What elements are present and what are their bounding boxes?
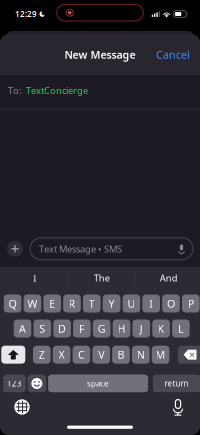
- staticText: T: [89, 296, 95, 311]
- staticText: Cancel: [156, 47, 190, 62]
- button[interactable]: Q: [4, 294, 21, 312]
- button[interactable]: P: [182, 294, 200, 312]
- staticText: The: [94, 272, 110, 284]
- staticText: G: [98, 321, 106, 336]
- staticText: Q: [9, 296, 17, 311]
- button[interactable]: W: [24, 294, 41, 312]
- staticText: space: [87, 378, 109, 389]
- staticText: New Message: [64, 47, 135, 62]
- button[interactable]: The: [69, 267, 135, 289]
- staticText: Y: [109, 296, 115, 311]
- staticText: K: [158, 321, 165, 336]
- button[interactable]: Z: [33, 346, 51, 364]
- staticText: 12:29: [15, 9, 37, 19]
- button[interactable]: R: [63, 294, 81, 312]
- staticText: J: [140, 321, 143, 336]
- staticText: L: [178, 321, 184, 336]
- staticText: C: [78, 348, 85, 362]
- button[interactable]: M: [152, 346, 169, 364]
- button[interactable]: H: [113, 319, 130, 337]
- button[interactable]: Y: [103, 294, 120, 312]
- button[interactable]: A: [14, 319, 31, 337]
- button[interactable]: X: [53, 346, 70, 364]
- button[interactable]: Shift: [1, 346, 25, 364]
- staticText: O: [167, 296, 175, 311]
- button[interactable]: O: [162, 294, 180, 312]
- staticText: To:: [8, 84, 22, 97]
- staticText: 123: [7, 378, 22, 389]
- staticText: X: [59, 348, 65, 362]
- staticText: D: [58, 321, 66, 336]
- button[interactable]: Add attachment: [7, 241, 23, 257]
- button[interactable]: Emoji: [28, 374, 46, 392]
- button[interactable]: G: [93, 319, 110, 337]
- button[interactable]: V: [92, 346, 110, 364]
- button[interactable]: I: [142, 294, 160, 312]
- button[interactable]: J: [132, 319, 150, 337]
- staticText: P: [188, 296, 194, 311]
- button[interactable]: Delete: [178, 346, 200, 364]
- staticText: I: [33, 272, 36, 284]
- button[interactable]: U: [123, 294, 140, 312]
- staticText: B: [117, 348, 124, 362]
- button[interactable]: Dictate: [160, 396, 196, 418]
- staticText: A: [19, 321, 26, 336]
- staticText: And: [160, 272, 178, 284]
- button[interactable]: B: [112, 346, 130, 364]
- button[interactable]: And: [136, 267, 200, 289]
- staticText: TextConcierge: [26, 84, 88, 97]
- button[interactable]: Cancel: [146, 40, 200, 69]
- button[interactable]: D: [53, 319, 71, 337]
- button[interactable]: 123: [3, 374, 26, 392]
- staticText: F: [79, 321, 85, 336]
- staticText: E: [49, 296, 55, 311]
- button[interactable]: N: [132, 346, 150, 364]
- staticText: V: [98, 348, 104, 362]
- button[interactable]: C: [73, 346, 90, 364]
- staticText: R: [68, 296, 75, 311]
- button[interactable]: S: [33, 319, 51, 337]
- button[interactable]: I: [2, 267, 68, 289]
- staticText: M: [156, 348, 166, 362]
- button[interactable]: F: [73, 319, 91, 337]
- staticText: return: [165, 378, 189, 389]
- staticText: S: [39, 321, 45, 336]
- staticText: H: [117, 321, 125, 336]
- staticText: N: [137, 348, 145, 362]
- button[interactable]: return: [153, 374, 200, 392]
- button[interactable]: K: [152, 319, 170, 337]
- staticText: Z: [39, 348, 45, 362]
- button[interactable]: L: [172, 319, 190, 337]
- button[interactable]: T: [83, 294, 101, 312]
- staticText: U: [127, 296, 135, 311]
- button[interactable]: space: [48, 374, 148, 392]
- staticText: I: [149, 296, 153, 311]
- staticText: Text Message • SMS: [39, 243, 122, 255]
- staticText: W: [27, 296, 37, 311]
- button[interactable]: E: [43, 294, 61, 312]
- button[interactable]: Switch keyboard: [4, 396, 40, 418]
